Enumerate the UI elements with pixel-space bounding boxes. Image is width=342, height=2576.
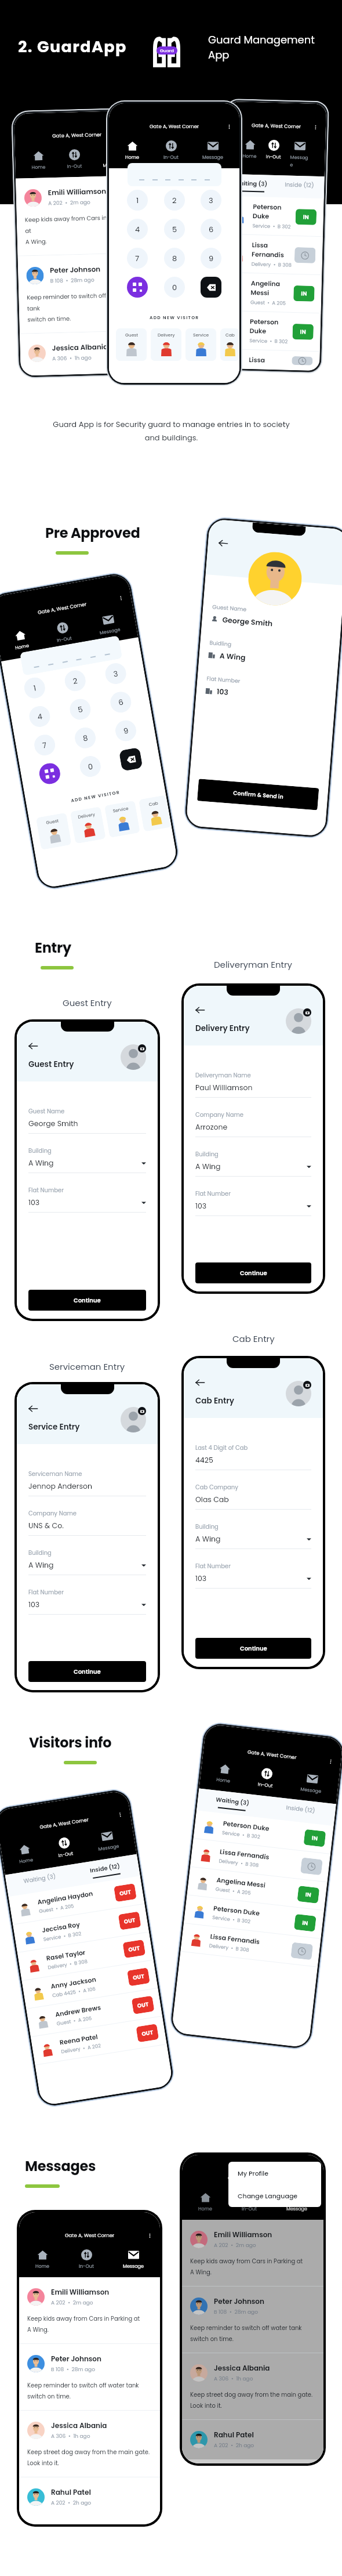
button[interactable]: Back [195,1005,205,1015]
button[interactable]: Pending [291,1942,313,1960]
button[interactable]: Waiting (3) [5,1865,74,1897]
button[interactable]: In-Out [74,2249,99,2270]
button[interactable]: Confirm & Send in [197,779,319,810]
button[interactable]: Home [27,149,50,171]
button[interactable]: Continue [28,1290,146,1311]
button[interactable]: 9 [201,248,221,269]
button[interactable]: In-Out [261,139,286,161]
button[interactable]: Home [12,1841,38,1866]
button[interactable]: OUT [118,1911,141,1930]
button[interactable]: Rahul Patel [19,2477,160,2517]
button[interactable]: More options [116,1811,124,1818]
button[interactable]: 0 [164,277,185,298]
button[interactable]: Angelina Haydon [8,1876,145,1924]
button[interactable]: Message [98,147,129,169]
button[interactable]: Pending [300,1857,323,1875]
button[interactable]: Message [285,140,314,169]
button[interactable]: Continue [28,1661,146,1682]
button[interactable]: Peterson Duke [193,1810,334,1854]
button[interactable]: Waiting (3) [225,174,275,197]
button[interactable]: IN [295,209,317,225]
button[interactable]: In-Out [51,1835,78,1860]
button[interactable]: Inside (12) [265,1796,336,1826]
button[interactable]: Jessica Albania [20,331,145,376]
button[interactable]: Scan QR code [38,761,62,786]
button[interactable]: 3 [104,662,128,686]
button[interactable]: Home [31,2249,54,2270]
button[interactable]: Peter Johnson [182,2286,323,2353]
button[interactable]: IN [294,1914,316,1932]
button[interactable]: Peterson Duke [184,1895,324,1938]
button[interactable]: 8 [164,248,185,269]
button[interactable]: Message [282,2191,312,2213]
button[interactable]: Continue [195,1638,311,1659]
button[interactable]: Lissa Fernandis [190,1839,330,1882]
button[interactable]: Lissa Fernandis [223,234,323,275]
button[interactable]: Guest [36,813,72,850]
button[interactable]: Home [211,1761,237,1785]
button[interactable]: Pending [294,247,316,263]
button[interactable]: 9 [114,719,138,743]
button[interactable]: Rasel Taylor [17,1932,153,1980]
button[interactable]: Peter Johnson [19,2344,160,2410]
button[interactable]: Pending [292,356,313,365]
button[interactable]: 6 [109,690,133,714]
button[interactable]: 6 [201,219,221,240]
button[interactable]: Waiting (3) [197,1788,268,1818]
button[interactable]: 7 [33,733,57,757]
button[interactable]: Delivery [70,807,106,844]
button[interactable]: My Profile [228,2162,321,2184]
button[interactable]: Inside (12) [275,175,324,199]
button[interactable]: Jeccisa Roy [13,1904,149,1952]
button[interactable]: 8 [73,726,97,750]
button[interactable]: IN [303,1829,326,1847]
button[interactable]: OUT [136,2024,159,2042]
button[interactable]: Change photo [138,1044,146,1052]
button[interactable]: 2 [63,669,87,693]
button[interactable]: 0 [78,754,102,779]
button[interactable]: Emili Williamson [19,2277,160,2343]
button[interactable]: More options [312,123,319,131]
button[interactable]: Message [92,611,125,638]
button[interactable]: Delivery [151,328,181,361]
button[interactable]: Peterson Duke [221,311,321,351]
button[interactable]: OUT [123,1939,146,1958]
button[interactable]: Scan QR code [127,277,148,298]
button[interactable]: Reena Patel [31,2016,167,2065]
button[interactable]: More options [117,594,125,602]
button[interactable]: Emili Williamson [182,2220,323,2286]
button[interactable]: Change photo [303,1008,311,1016]
button[interactable]: Home [8,627,34,653]
button[interactable]: Change photo [138,1407,146,1415]
button[interactable]: Back [195,1378,205,1387]
button[interactable]: In-Out [237,2191,261,2213]
button[interactable]: Change Language [228,2184,321,2207]
button[interactable]: More options [327,1758,334,1765]
button[interactable]: 7 [127,248,148,269]
button[interactable]: 5 [68,697,92,721]
button[interactable]: Lissa Fernandis [221,349,320,371]
button[interactable]: Jessica Albania [182,2353,323,2419]
button[interactable]: More options [146,2232,153,2239]
button[interactable]: Back [28,1041,38,1051]
button[interactable]: Lissa Fernandis [181,1923,321,1967]
button[interactable]: 1 [23,676,47,700]
button[interactable]: OUT [131,1996,154,2014]
button[interactable]: Peter Johnson [18,253,144,333]
button[interactable]: Back [218,538,228,548]
button[interactable]: Angelina Messi [222,273,322,313]
button[interactable]: More options [225,123,232,130]
button[interactable]: OUT [114,1883,137,1902]
button[interactable]: Delete [201,277,221,298]
button[interactable]: In-Out [253,1766,279,1790]
button[interactable]: Message [91,1828,124,1854]
button[interactable]: Delete [119,747,143,771]
button[interactable]: 2 [164,190,185,211]
button[interactable]: IN [297,1886,320,1904]
button[interactable]: Guest [116,328,147,361]
button[interactable]: In-Out [159,140,183,161]
button[interactable]: 4 [127,219,148,240]
button[interactable]: Andrew Brews [26,1988,162,2037]
button[interactable]: Anny Jackson [22,1960,158,2009]
